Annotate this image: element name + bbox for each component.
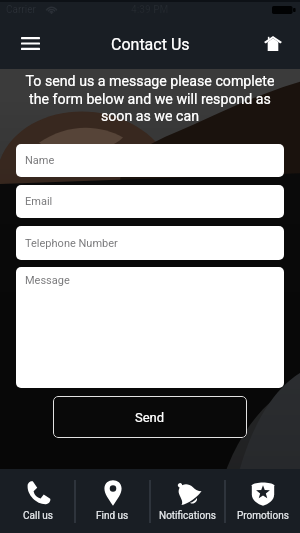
button[interactable]: Telephone Number	[16, 226, 284, 260]
button[interactable]: Home	[254, 24, 292, 62]
staticText: Promotions	[237, 510, 289, 522]
button[interactable]: Message	[16, 267, 284, 388]
staticText: Name	[25, 154, 55, 167]
staticText: Contact Us	[111, 35, 190, 54]
staticText: Message	[25, 274, 70, 287]
staticText: 4:39 PM	[131, 4, 169, 16]
button[interactable]: Find us	[75, 469, 150, 533]
button[interactable]: Email	[16, 185, 284, 218]
staticText: Email	[25, 195, 53, 208]
staticText: Notifications	[159, 510, 216, 522]
staticText: Carrier	[6, 4, 36, 16]
button[interactable]: Menu	[9, 25, 52, 62]
staticText: To send us a message please complete the…	[14, 73, 286, 124]
staticText: Telephone Number	[25, 237, 118, 250]
button[interactable]: Notifications	[150, 469, 225, 533]
staticText: Send	[135, 410, 165, 425]
button[interactable]: Call us	[0, 469, 75, 533]
button[interactable]: Promotions	[225, 469, 300, 533]
staticText: Find us	[96, 510, 129, 522]
button[interactable]: Name	[16, 144, 284, 177]
button[interactable]: Send	[53, 396, 247, 438]
staticText: Call us	[23, 510, 53, 522]
